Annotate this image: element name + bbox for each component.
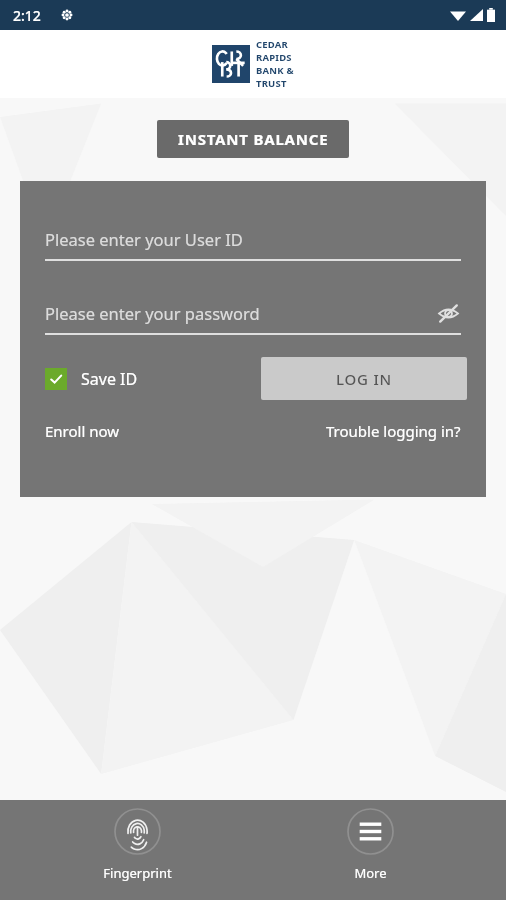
staticText: Fingerprint bbox=[103, 864, 172, 882]
button[interactable]: LOG IN bbox=[261, 357, 467, 400]
staticText: Please enter your password bbox=[45, 302, 260, 324]
staticText: More bbox=[354, 864, 387, 882]
staticText: TRUST bbox=[256, 77, 287, 90]
button[interactable]: More bbox=[294, 808, 446, 882]
staticText: BANK & bbox=[256, 64, 294, 77]
staticText: LOG IN bbox=[336, 369, 393, 389]
staticText: Trouble logging in? bbox=[326, 421, 461, 441]
button[interactable]: Trouble logging in? bbox=[326, 421, 461, 441]
staticText: RAPIDS bbox=[256, 51, 292, 64]
staticText: CEDAR bbox=[256, 38, 288, 51]
staticText: INSTANT BALANCE bbox=[178, 129, 329, 149]
button[interactable]: Save ID bbox=[45, 368, 138, 390]
button[interactable]: INSTANT BALANCE bbox=[157, 120, 349, 158]
button[interactable]: Fingerprint bbox=[61, 808, 213, 882]
staticText: Enroll now bbox=[45, 421, 120, 441]
staticText: Please enter your User ID bbox=[45, 228, 243, 250]
staticText: 2:12 bbox=[13, 6, 41, 25]
staticText: Save ID bbox=[81, 368, 138, 390]
button[interactable]: Enroll now bbox=[45, 421, 120, 441]
button[interactable]: Show password bbox=[435, 301, 461, 325]
